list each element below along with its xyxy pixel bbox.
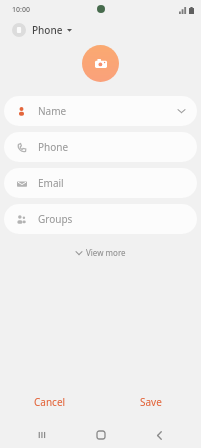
button[interactable]: Recent apps — [25, 422, 59, 448]
button[interactable]: Phone — [4, 132, 197, 162]
staticText: Name — [38, 104, 178, 118]
staticText: Phone — [32, 23, 63, 37]
staticText: Phone — [38, 140, 185, 154]
button[interactable]: Save — [126, 391, 176, 413]
button[interactable]: Home — [84, 422, 118, 448]
button[interactable]: Back — [142, 422, 176, 448]
staticText: Groups — [38, 212, 185, 226]
staticText: Email — [38, 176, 185, 190]
staticText: Cancel — [34, 395, 66, 409]
staticText: 10:00 — [12, 5, 30, 15]
button[interactable]: Groups — [4, 204, 197, 234]
staticText: Save — [140, 395, 162, 409]
button[interactable]: Email — [4, 168, 197, 198]
button[interactable]: Add photo — [82, 45, 119, 82]
button[interactable]: Phone — [9, 20, 75, 40]
staticText: View more — [86, 247, 126, 258]
button[interactable]: Name — [4, 96, 197, 126]
button[interactable]: Cancel — [20, 391, 80, 413]
button[interactable]: View more — [68, 243, 134, 262]
